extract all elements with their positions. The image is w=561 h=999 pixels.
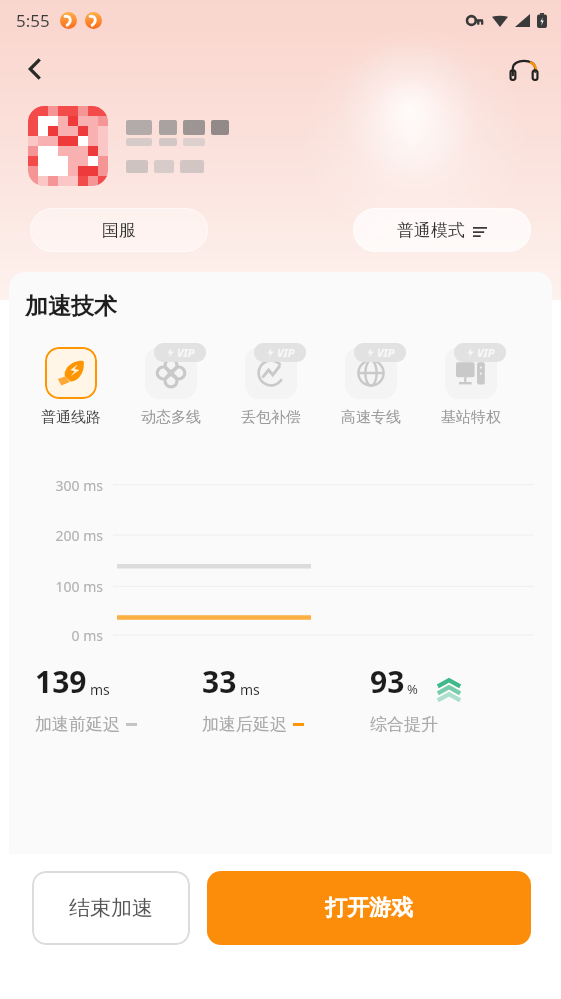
button[interactable]: Customer service xyxy=(501,46,547,92)
staticText: ms xyxy=(240,680,260,699)
staticText: ms xyxy=(90,680,110,699)
staticText: 加速前延迟 xyxy=(35,714,120,735)
button[interactable]: Back xyxy=(12,46,58,92)
staticText: 139 xyxy=(35,661,87,702)
staticText: 结束加速 xyxy=(69,895,153,921)
staticText: 基站特权 xyxy=(441,408,501,427)
button[interactable]: 国服 xyxy=(30,208,208,252)
staticText: VIP xyxy=(377,345,395,360)
button[interactable]: VIP xyxy=(121,343,221,427)
staticText: 300 ms xyxy=(9,476,103,495)
staticText: 93 xyxy=(370,661,405,702)
button[interactable]: 普通线路 xyxy=(21,343,121,427)
staticText: 普通模式 xyxy=(397,220,465,241)
staticText: VIP xyxy=(177,345,195,360)
staticText: 动态多线 xyxy=(141,408,201,427)
button[interactable]: VIP xyxy=(421,343,521,427)
button[interactable]: 打开游戏 xyxy=(207,871,531,945)
staticText: 丢包补偿 xyxy=(241,408,301,427)
staticText: 33 xyxy=(202,661,237,702)
staticText: 0 ms xyxy=(9,626,103,645)
staticText: VIP xyxy=(477,345,495,360)
staticText: 普通线路 xyxy=(41,408,101,427)
button[interactable]: 普通模式 xyxy=(353,208,531,252)
staticText: VIP xyxy=(277,345,295,360)
button[interactable]: 结束加速 xyxy=(32,871,190,945)
staticText: 综合提升 xyxy=(370,714,438,735)
staticText: % xyxy=(407,680,418,698)
staticText: 打开游戏 xyxy=(325,894,413,922)
staticText: 加速后延迟 xyxy=(202,714,287,735)
staticText: 加速技术 xyxy=(25,292,117,321)
button[interactable]: VIP xyxy=(221,343,321,427)
staticText: 高速专线 xyxy=(341,408,401,427)
staticText: 5:55 xyxy=(16,9,50,32)
staticText: 国服 xyxy=(102,220,136,241)
staticText: 200 ms xyxy=(9,526,103,545)
button[interactable]: VIP xyxy=(321,343,421,427)
staticText: 100 ms xyxy=(9,577,103,596)
